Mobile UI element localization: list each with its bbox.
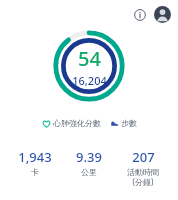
button[interactable]: Info <box>132 7 148 23</box>
button[interactable]: 54 <box>51 28 127 104</box>
staticText: 207 <box>132 148 155 166</box>
staticText: 9.39 <box>76 148 102 166</box>
button[interactable]: 9.39 <box>62 148 116 177</box>
staticText: 卡 <box>31 167 39 177</box>
staticText: 54 <box>78 45 101 72</box>
button[interactable]: 心肺強化分數 <box>42 118 101 128</box>
staticText: 16,204 <box>72 73 107 88</box>
staticText: 心肺強化分數 <box>53 118 101 128</box>
staticText: 公里 <box>81 167 97 177</box>
staticText: 1,943 <box>18 148 52 166</box>
button[interactable]: 207 <box>116 148 170 187</box>
staticText: 步數 <box>121 118 137 128</box>
button[interactable]: 步數 <box>110 118 137 128</box>
button[interactable]: Profile <box>154 6 171 23</box>
staticText: 活動時間 (分鐘) <box>127 167 159 187</box>
button[interactable]: 1,943 <box>8 148 62 177</box>
